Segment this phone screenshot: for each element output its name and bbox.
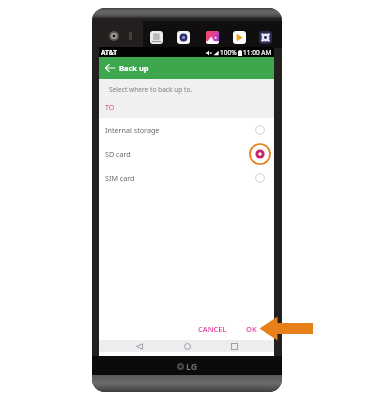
- staticText: 11:00 AM: [243, 48, 272, 57]
- staticText: TO: [105, 103, 115, 113]
- button[interactable]: CANCEL: [193, 320, 232, 338]
- staticText: Internal storage: [105, 125, 160, 135]
- button[interactable]: Home: [179, 340, 195, 352]
- button[interactable]: App shortcut: [150, 31, 163, 44]
- staticText: OK: [246, 324, 257, 334]
- button[interactable]: Back: [102, 60, 118, 76]
- button[interactable]: App shortcut: [177, 31, 190, 44]
- button[interactable]: OK: [241, 320, 262, 338]
- button[interactable]: App shortcut: [206, 31, 219, 44]
- button[interactable]: Internal storage: [99, 118, 274, 142]
- staticText: 100%: [220, 48, 237, 57]
- staticText: CANCEL: [198, 324, 227, 334]
- button[interactable]: App shortcut: [233, 31, 246, 44]
- staticText: Back up: [119, 63, 149, 73]
- button[interactable]: Recent apps: [226, 340, 242, 352]
- staticText: SIM card: [105, 173, 135, 183]
- button[interactable]: App shortcut: [259, 31, 272, 44]
- button[interactable]: Back: [131, 340, 147, 352]
- button[interactable]: SD card: [99, 142, 274, 166]
- staticText: LG: [186, 360, 198, 372]
- staticText: Select where to back up to.: [109, 85, 193, 94]
- button[interactable]: SIM card: [99, 166, 274, 190]
- staticText: AT&T: [101, 48, 117, 57]
- staticText: SD card: [105, 149, 131, 159]
